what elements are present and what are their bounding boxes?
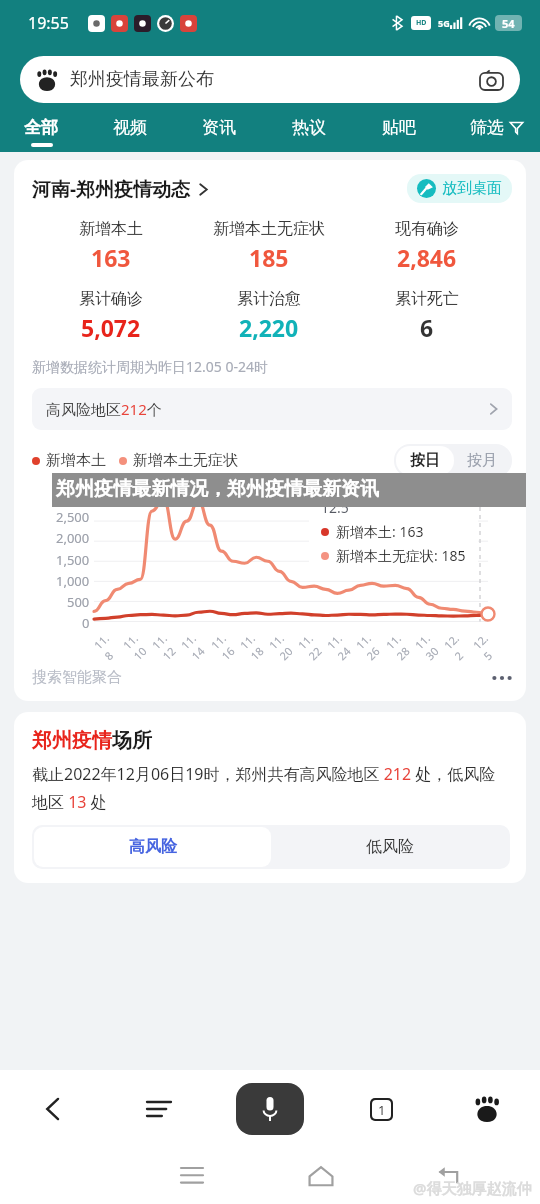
staticText: 新增本土无症状 — [213, 219, 325, 239]
staticText: 新增数据统计周期为昨日12.05 0-24时 — [32, 357, 268, 376]
staticText: 185 — [249, 242, 289, 273]
button[interactable]: 搜索智能聚合 — [32, 668, 512, 687]
staticText: 新增本土: 163 — [336, 522, 424, 541]
staticText: 现有确诊 — [395, 219, 459, 239]
button[interactable]: Back — [0, 1070, 106, 1148]
staticText: 6 — [420, 312, 434, 343]
staticText: 新增本土无症状: 185 — [336, 546, 466, 565]
staticText: 11.28 — [382, 627, 419, 663]
button[interactable]: 郑州疫情最新公布 — [20, 56, 520, 103]
staticText: 11.16 — [207, 627, 244, 663]
staticText: 2,846 — [397, 242, 457, 273]
staticText: 163 — [91, 242, 131, 273]
button[interactable]: 高风险 — [34, 827, 271, 867]
staticText: 54 — [502, 16, 515, 31]
staticText: 搜索智能聚合 — [32, 668, 492, 687]
staticText: @得天独厚赵流仲 — [413, 1178, 532, 1198]
button[interactable]: 热议 — [290, 117, 328, 138]
button[interactable]: 全部 — [22, 117, 60, 138]
button[interactable]: Home — [256, 1148, 385, 1204]
staticText: 累计死亡 — [395, 289, 459, 309]
staticText: HD — [416, 18, 427, 28]
staticText: 1,500 — [56, 551, 90, 569]
staticText: 按日 — [410, 451, 440, 470]
staticText: 12.5 — [469, 627, 506, 663]
button[interactable]: Baidu home — [434, 1070, 540, 1148]
staticText: 0 — [82, 614, 90, 632]
staticText: 1,000 — [56, 572, 90, 590]
staticText: 郑州疫情场所 — [32, 728, 152, 753]
button[interactable]: 资讯 — [200, 117, 238, 138]
staticText: 11.12 — [148, 627, 185, 663]
staticText: 2,220 — [239, 312, 299, 343]
button[interactable]: Back — [385, 1148, 514, 1204]
staticText: 新增本土 — [46, 451, 106, 470]
staticText: 11.10 — [119, 627, 156, 663]
staticText: 2,000 — [56, 529, 90, 547]
button[interactable]: 按月 — [454, 446, 510, 475]
staticText: 11.22 — [294, 627, 331, 663]
button[interactable]: 高风险地区212个 — [32, 388, 512, 430]
button[interactable]: Tabs — [328, 1070, 434, 1148]
staticText: 视频 — [113, 117, 147, 138]
staticText: 郑州疫情最新公布 — [70, 68, 478, 91]
staticText: 5G — [438, 17, 450, 29]
staticText: 500 — [67, 593, 90, 611]
staticText: 12.5 — [321, 498, 349, 517]
button[interactable]: Camera search — [478, 67, 504, 93]
staticText: 河南-郑州疫情动态 — [32, 176, 191, 202]
button[interactable]: 视频 — [111, 117, 149, 138]
staticText: 3,000 — [56, 487, 90, 505]
staticText: 11.18 — [236, 627, 273, 663]
button[interactable]: Menu — [106, 1070, 212, 1148]
staticText: 累计确诊 — [79, 289, 143, 309]
staticText: 新增本土 — [79, 219, 143, 239]
staticText: 低风险 — [366, 837, 414, 857]
staticText: 19:55 — [28, 12, 69, 34]
button[interactable]: 低风险 — [271, 827, 508, 867]
button[interactable]: 筛选 — [470, 117, 524, 138]
button[interactable]: Recents — [128, 1148, 256, 1204]
staticText: 热议 — [292, 117, 326, 138]
staticText: 12.2 — [440, 627, 477, 663]
staticText: 筛选 — [470, 117, 504, 138]
staticText: 2,500 — [56, 508, 90, 526]
staticText: 11.20 — [265, 627, 302, 663]
staticText: 11.30 — [411, 627, 448, 663]
button[interactable]: 按日 — [396, 446, 454, 475]
staticText: 贴吧 — [382, 117, 416, 138]
button[interactable]: 贴吧 — [380, 117, 418, 138]
staticText: 新增本土无症状 — [133, 451, 238, 470]
staticText: 1 — [378, 1101, 386, 1119]
staticText: 高风险地区212个 — [46, 399, 489, 419]
staticText: 放到桌面 — [442, 179, 502, 198]
staticText: 5,072 — [81, 312, 141, 343]
staticText: 郑州疫情最新情况，郑州疫情最新资讯 — [56, 477, 379, 501]
staticText: 11.24 — [323, 627, 360, 663]
staticText: 全部 — [24, 117, 58, 138]
staticText: 11.14 — [177, 627, 214, 663]
staticText: 11.26 — [352, 627, 389, 663]
staticText: 资讯 — [202, 117, 236, 138]
staticText: 11.8 — [90, 627, 127, 663]
staticText: 高风险 — [129, 837, 177, 857]
staticText: 累计治愈 — [237, 289, 301, 309]
button[interactable]: 放到桌面 — [407, 174, 512, 203]
button[interactable]: 河南-郑州疫情动态 — [32, 176, 209, 202]
staticText: 按月 — [467, 451, 497, 470]
staticText: 截止2022年12月06日19时，郑州共有高风险地区 212 处，低风险地区 1… — [32, 763, 510, 813]
button[interactable]: Voice search — [236, 1083, 304, 1135]
